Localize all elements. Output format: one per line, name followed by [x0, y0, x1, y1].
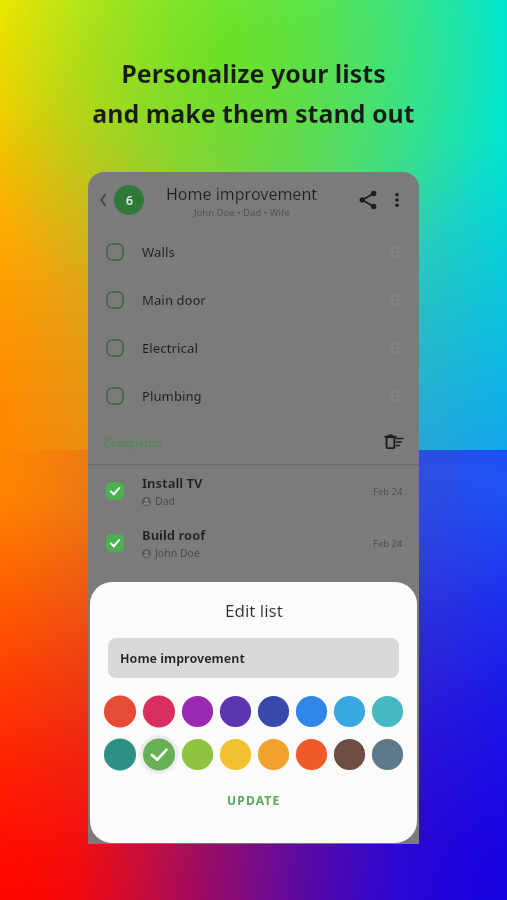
button[interactable]: Reorder — [385, 338, 405, 358]
button[interactable]: Mark complete — [106, 243, 124, 261]
button[interactable]: Mark complete — [88, 324, 419, 372]
staticText: Feb 24 — [373, 537, 403, 550]
staticText: Home improvement — [120, 650, 245, 667]
button[interactable]: Mark complete — [106, 339, 124, 357]
button[interactable]: Color option — [218, 693, 253, 730]
button[interactable]: Color option — [294, 736, 329, 773]
button[interactable]: Color option — [102, 736, 138, 773]
button[interactable]: Mark complete — [106, 387, 124, 405]
staticText: Walls — [142, 243, 175, 261]
staticText: Build roof — [142, 526, 206, 544]
staticText: Feb 24 — [373, 485, 403, 498]
button[interactable]: Reorder — [385, 242, 405, 262]
button[interactable]: Mark incomplete — [106, 482, 124, 500]
staticText: Electrical — [142, 339, 198, 357]
staticText: John Doe — [155, 546, 200, 560]
button[interactable]: Mark complete — [88, 228, 419, 276]
button[interactable]: 6 — [114, 185, 144, 215]
button[interactable]: Mark incomplete — [88, 465, 419, 517]
button[interactable]: UPDATE — [213, 786, 295, 814]
button[interactable]: Color option — [141, 693, 177, 730]
button[interactable]: Mark complete — [106, 291, 124, 309]
button[interactable]: Color option — [370, 693, 405, 730]
button[interactable]: Back — [92, 188, 116, 212]
button[interactable]: More options — [385, 188, 409, 212]
button[interactable]: Share — [355, 187, 381, 213]
staticText: and make them stand out — [92, 96, 415, 130]
button[interactable]: Color option — [180, 736, 215, 773]
staticText: Completed — [104, 435, 162, 450]
staticText: UPDATE — [227, 792, 281, 808]
button[interactable]: Home improvement — [108, 638, 399, 678]
button[interactable]: Color option — [256, 693, 291, 730]
button[interactable]: Delete completed — [383, 431, 405, 453]
staticText: Personalize your lists — [121, 56, 386, 90]
button[interactable]: Reorder — [385, 290, 405, 310]
button[interactable]: Color option — [141, 736, 177, 773]
button[interactable]: Mark incomplete — [88, 517, 419, 569]
button[interactable]: Reorder — [385, 386, 405, 406]
staticText: 6 — [126, 192, 133, 208]
button[interactable]: Color option — [370, 736, 405, 773]
button[interactable]: Mark incomplete — [106, 534, 124, 552]
button[interactable]: Color option — [294, 693, 329, 730]
staticText: Main door — [142, 291, 206, 309]
staticText: Home improvement — [166, 183, 318, 205]
button[interactable]: Color option — [332, 736, 367, 773]
button[interactable]: Color option — [332, 693, 367, 730]
button[interactable]: Mark complete — [88, 372, 419, 420]
button[interactable]: Mark complete — [88, 276, 419, 324]
staticText: Edit list — [225, 599, 283, 622]
staticText: Dad — [155, 494, 176, 508]
button[interactable]: Color option — [102, 693, 138, 730]
button[interactable]: Color option — [218, 736, 253, 773]
button[interactable]: Color option — [256, 736, 291, 773]
staticText: John Doe • Dad • Wife — [194, 206, 290, 219]
staticText: Install TV — [142, 474, 203, 492]
button[interactable]: Color option — [180, 693, 215, 730]
staticText: Plumbing — [142, 387, 202, 405]
